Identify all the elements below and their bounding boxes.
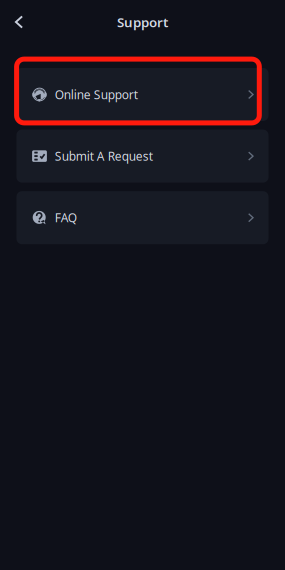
- button[interactable]: FAQ: [16, 191, 268, 244]
- staticText: FAQ: [55, 210, 77, 226]
- staticText: Online Support: [55, 86, 138, 102]
- button[interactable]: Online Support: [16, 68, 268, 121]
- staticText: Support: [117, 13, 168, 31]
- staticText: Submit A Request: [55, 148, 153, 164]
- button[interactable]: Back: [5, 4, 33, 40]
- button[interactable]: Submit A Request: [16, 130, 268, 183]
